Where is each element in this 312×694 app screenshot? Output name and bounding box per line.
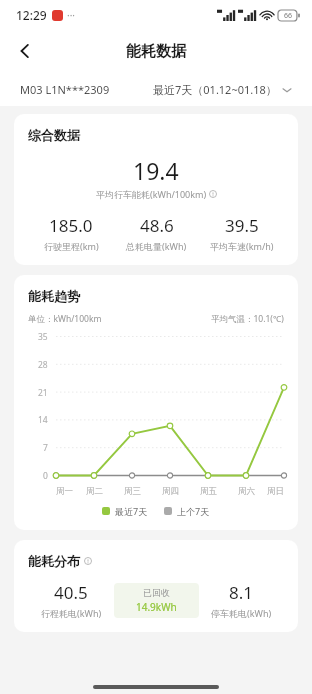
staticText: 能耗数据	[126, 42, 186, 61]
button[interactable]: 最近7天（01.12~01.18）	[153, 82, 292, 97]
staticText: 48.6	[140, 214, 174, 237]
staticText: 周日	[267, 486, 284, 497]
button[interactable]: Back	[8, 34, 42, 68]
button[interactable]: 能耗趋势	[14, 275, 298, 530]
staticText: 能耗分布	[28, 553, 80, 569]
staticText: 21	[38, 387, 48, 398]
staticText: 39.5	[225, 214, 259, 237]
staticText: 平均气温：10.1(℃)	[211, 313, 284, 325]
staticText: 平均车速(km/h)	[210, 240, 274, 252]
staticText: 上个7天	[177, 505, 210, 517]
staticText: 周六	[238, 486, 255, 497]
staticText: 185.0	[49, 214, 93, 237]
staticText: 35	[38, 331, 48, 342]
staticText: 已回收	[143, 587, 170, 598]
staticText: 行程耗电(kWh)	[41, 607, 102, 619]
staticText: 最近7天（01.12~01.18）	[153, 82, 277, 97]
staticText: 最近7天	[115, 505, 148, 517]
button[interactable]: 能耗分布	[14, 540, 298, 632]
staticText: 行驶里程(km)	[44, 240, 99, 252]
button[interactable]: 综合数据	[14, 114, 298, 265]
button[interactable]: M03 L1N***2309	[20, 82, 110, 97]
staticText: 0	[43, 470, 48, 481]
staticText: 14	[38, 414, 48, 425]
staticText: 周五	[200, 486, 217, 497]
staticText: M03 L1N***2309	[20, 82, 110, 97]
staticText: 7	[43, 442, 48, 453]
staticText: 8.1	[229, 581, 254, 604]
staticText: 平均行车能耗(kWh/100km)	[96, 188, 207, 200]
staticText: 12:29	[16, 7, 47, 23]
staticText: 周三	[124, 486, 141, 497]
staticText: ···	[67, 8, 76, 22]
staticText: 19.4	[133, 155, 179, 186]
staticText: 综合数据	[28, 127, 80, 143]
staticText: 周二	[86, 486, 103, 497]
staticText: 周四	[162, 486, 179, 497]
staticText: 周一	[56, 486, 73, 497]
staticText: 单位：kWh/100km	[28, 313, 102, 325]
staticText: 28	[38, 359, 48, 370]
staticText: 能耗趋势	[28, 288, 80, 304]
staticText: 停车耗电(kWh)	[211, 607, 272, 619]
staticText: 总耗电量(kWh)	[126, 240, 187, 252]
staticText: 66	[284, 11, 293, 21]
staticText: 14.9kWh	[136, 600, 177, 614]
staticText: 40.5	[54, 581, 88, 604]
